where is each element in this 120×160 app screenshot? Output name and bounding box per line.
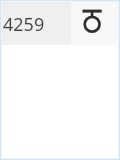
- staticText: 4259: [3, 12, 45, 37]
- button[interactable]: Account: [71, 2, 118, 45]
- button[interactable]: 4259: [2, 2, 71, 45]
